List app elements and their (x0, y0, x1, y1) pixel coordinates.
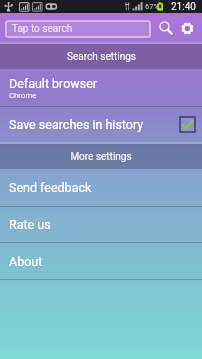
staticText: 67% (145, 2, 159, 11)
button[interactable]: Default browser (0, 69, 202, 106)
staticText: Chrome (9, 91, 37, 100)
staticText: Send feedback (9, 180, 92, 195)
button[interactable]: Tap to search (5, 20, 151, 38)
staticText: About (9, 254, 43, 269)
button[interactable]: Search (153, 14, 177, 38)
button[interactable]: Save searches in history (0, 107, 202, 142)
button[interactable]: Settings (176, 14, 200, 38)
staticText: Save searches in history (9, 117, 179, 132)
staticText: Tap to search (12, 23, 73, 35)
button[interactable]: About (0, 243, 202, 279)
staticText: Default browser (9, 76, 98, 91)
staticText: Rate us (9, 217, 51, 232)
button[interactable]: Send feedback (0, 169, 202, 206)
button[interactable]: Rate us (0, 207, 202, 242)
staticText: Search settings (67, 51, 136, 63)
staticText: 21:40 (171, 1, 196, 13)
staticText: More settings (70, 151, 132, 163)
